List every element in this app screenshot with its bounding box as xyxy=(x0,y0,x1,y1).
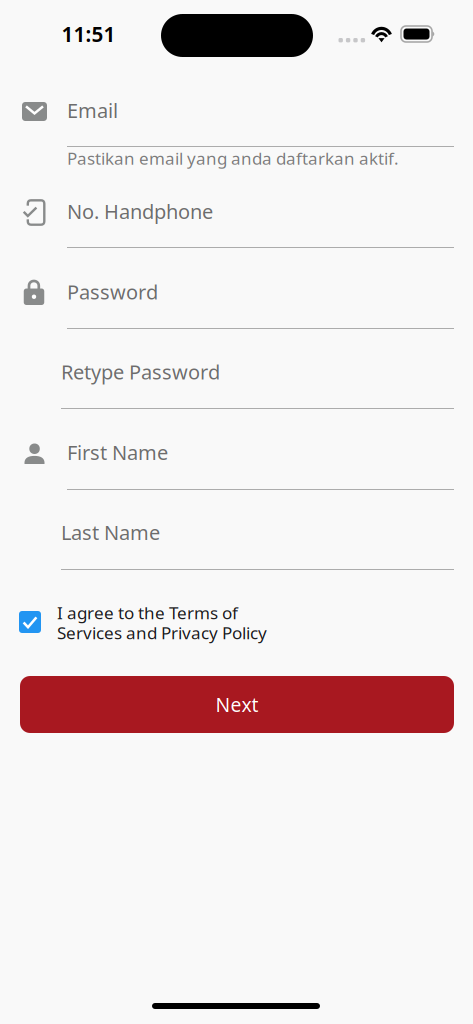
staticText: Email xyxy=(67,96,118,124)
staticText: Pastikan email yang anda daftarkan aktif… xyxy=(67,146,399,170)
staticText: No. Handphone xyxy=(67,197,213,225)
staticText: Services and Privacy Policy xyxy=(57,621,267,644)
button[interactable]: Next xyxy=(20,676,454,733)
staticText: First Name xyxy=(67,438,168,466)
button[interactable]: Retype Password xyxy=(22,358,454,416)
staticText: I agree to the Terms of xyxy=(57,601,238,624)
button[interactable]: I agree to the Terms of xyxy=(19,601,283,641)
button[interactable]: No. Handphone xyxy=(22,197,454,255)
button[interactable]: Last Name xyxy=(22,518,454,577)
staticText: Next xyxy=(215,691,258,718)
button[interactable]: Email xyxy=(22,96,454,154)
staticText: Last Name xyxy=(61,518,160,546)
button[interactable]: Password xyxy=(22,278,454,336)
staticText: Password xyxy=(67,278,158,305)
staticText: 11:51 xyxy=(61,20,115,48)
button[interactable]: First Name xyxy=(22,438,454,497)
staticText: Retype Password xyxy=(61,358,220,385)
